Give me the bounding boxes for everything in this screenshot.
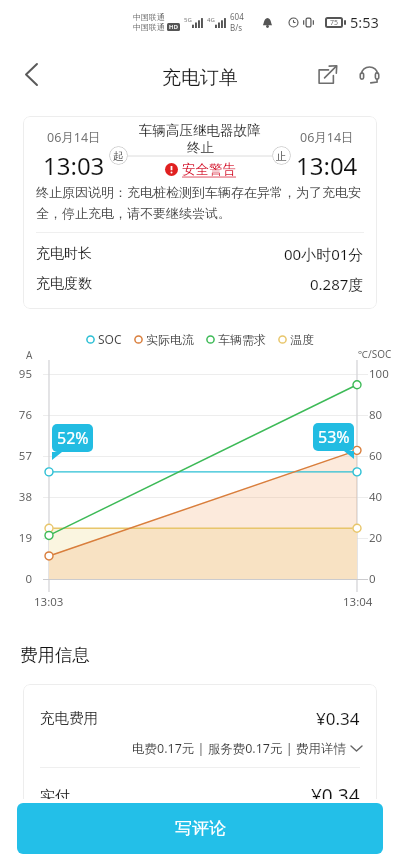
staticText: 76 <box>7 407 32 423</box>
staticText: 53% <box>318 426 350 448</box>
staticText: 充电费用 <box>40 709 98 727</box>
staticText: 0 <box>369 571 376 587</box>
staticText: HD <box>169 23 178 31</box>
staticText: 52% <box>57 427 89 449</box>
staticText: B/s <box>230 22 243 33</box>
staticText: 实际电流 <box>146 332 194 347</box>
staticText: 终止原因说明：充电桩检测到车辆存在异常，为了充电安全，停止充电，请不要继续尝试。 <box>36 184 366 222</box>
staticText: 充电度数 <box>36 275 92 293</box>
staticText: 40 <box>369 489 383 505</box>
staticText: 起 <box>113 149 124 163</box>
staticText: 温度 <box>290 332 314 347</box>
staticText: 车辆需求 <box>218 332 266 347</box>
staticText: 38 <box>7 489 32 505</box>
staticText: 充电时长 <box>36 245 92 263</box>
staticText: ¥0.34 <box>316 707 360 730</box>
button[interactable]: Share <box>306 53 348 95</box>
staticText: 写评论 <box>175 818 226 839</box>
staticText: 充电订单 <box>162 66 238 90</box>
staticText: 80 <box>369 407 383 423</box>
staticText: 19 <box>7 530 32 546</box>
staticText: A <box>26 348 33 362</box>
staticText: 0 <box>7 571 32 587</box>
staticText: ℃/SOC <box>358 347 392 361</box>
staticText: 0.287度 <box>310 274 364 294</box>
staticText: 实付 <box>40 787 70 806</box>
staticText: 20 <box>369 530 383 546</box>
staticText: 4G <box>207 16 215 24</box>
staticText: 95 <box>7 366 32 382</box>
staticText: 13:04 <box>343 594 373 610</box>
staticText: 06月14日 <box>47 129 101 146</box>
staticText: 60 <box>369 448 383 464</box>
button[interactable]: 写评论 <box>17 803 383 854</box>
staticText: 车辆高压继电器故障 <box>139 122 261 139</box>
staticText: 中国联通 <box>133 22 165 32</box>
staticText: ¥0.34 <box>311 783 360 809</box>
staticText: 13:03 <box>34 594 64 610</box>
staticText: 00小时01分 <box>284 244 364 264</box>
staticText: 费用信息 <box>20 644 90 666</box>
staticText: 75 <box>330 18 339 28</box>
staticText: 100 <box>369 366 389 382</box>
staticText: 5:53 <box>350 12 379 32</box>
staticText: 电费0.17元 | 服务费0.17元 | 费用详情 <box>132 740 346 757</box>
staticText: 安全警告 <box>182 161 236 178</box>
staticText: 中国联通 <box>133 12 165 22</box>
staticText: 13:03 <box>43 149 105 182</box>
staticText: 5G <box>184 16 192 24</box>
staticText: 13:04 <box>296 149 358 182</box>
staticText: SOC <box>98 331 122 347</box>
staticText: 止 <box>276 149 287 163</box>
staticText: 57 <box>7 448 32 464</box>
button[interactable]: Back <box>7 50 55 98</box>
staticText: 终止 <box>187 139 214 156</box>
button[interactable]: Customer service <box>348 53 390 95</box>
staticText: 06月14日 <box>300 129 354 146</box>
staticText: 604 <box>230 11 244 22</box>
